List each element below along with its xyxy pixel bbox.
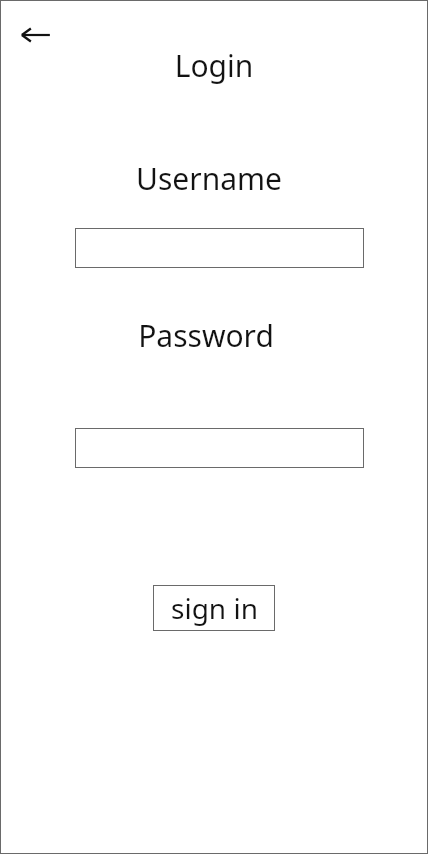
button[interactable]: Password input [75,428,364,468]
staticText: Login [0,45,428,854]
staticText: sign in [171,589,258,627]
staticText: Password [0,315,420,356]
button[interactable]: Back [17,17,53,53]
staticText: Username [0,158,423,199]
button[interactable]: sign in [153,585,275,631]
button[interactable]: Username input [75,228,364,268]
